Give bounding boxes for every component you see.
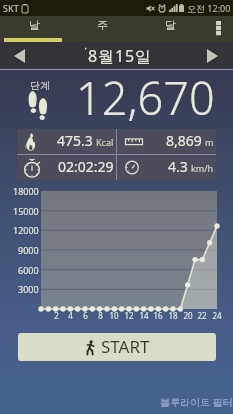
button[interactable]: 날	[0, 16, 68, 42]
staticText: m	[205, 136, 214, 148]
staticText: 8,869	[166, 131, 202, 150]
staticText: 6	[83, 310, 88, 321]
staticText: 4	[68, 310, 73, 321]
staticText: 18000	[13, 185, 39, 197]
button[interactable]: 8,869	[117, 129, 216, 154]
staticText: 9000	[18, 244, 39, 256]
button[interactable]: More options	[204, 16, 233, 42]
staticText: 22	[197, 310, 207, 321]
staticText: 3000	[18, 283, 39, 295]
staticText: 블루라이트 필터	[160, 395, 233, 409]
staticText: km/h	[191, 162, 214, 174]
staticText: 10	[109, 310, 119, 321]
staticText: 달	[165, 18, 176, 32]
staticText: 20	[183, 310, 193, 321]
button[interactable]: 4.3	[117, 155, 216, 180]
staticText: Kcal	[96, 136, 114, 148]
staticText: START	[101, 335, 150, 358]
button[interactable]: 475.3	[17, 129, 116, 154]
staticText: 02:02:29	[58, 157, 114, 176]
staticText: 8	[98, 310, 103, 321]
staticText: 24	[212, 310, 222, 321]
staticText: 18	[168, 310, 178, 321]
staticText: 4.3	[168, 157, 188, 176]
staticText: 14	[139, 310, 149, 321]
staticText: 475.3	[57, 131, 93, 150]
staticText: 단계	[30, 79, 50, 92]
staticText: ⋅	[84, 43, 88, 55]
staticText: 16	[153, 310, 163, 321]
button[interactable]: Previous day	[9, 46, 29, 66]
button[interactable]: START	[18, 333, 216, 361]
button[interactable]: 02:02:29	[17, 155, 116, 180]
staticText: 오전 12:00	[187, 2, 231, 14]
button[interactable]: 주	[68, 16, 136, 42]
button[interactable]: Next day	[202, 46, 222, 66]
staticText: 2	[54, 310, 59, 321]
staticText: 8월15일	[88, 45, 152, 67]
staticText: 12	[124, 310, 134, 321]
staticText: 15000	[13, 205, 39, 217]
staticText: SKT	[3, 2, 19, 14]
staticText: 날	[29, 18, 40, 32]
staticText: 6000	[18, 264, 39, 276]
staticText: 12,670	[76, 67, 215, 126]
staticText: 12000	[13, 224, 39, 236]
staticText: 주	[97, 18, 108, 32]
button[interactable]: 달	[136, 16, 204, 42]
